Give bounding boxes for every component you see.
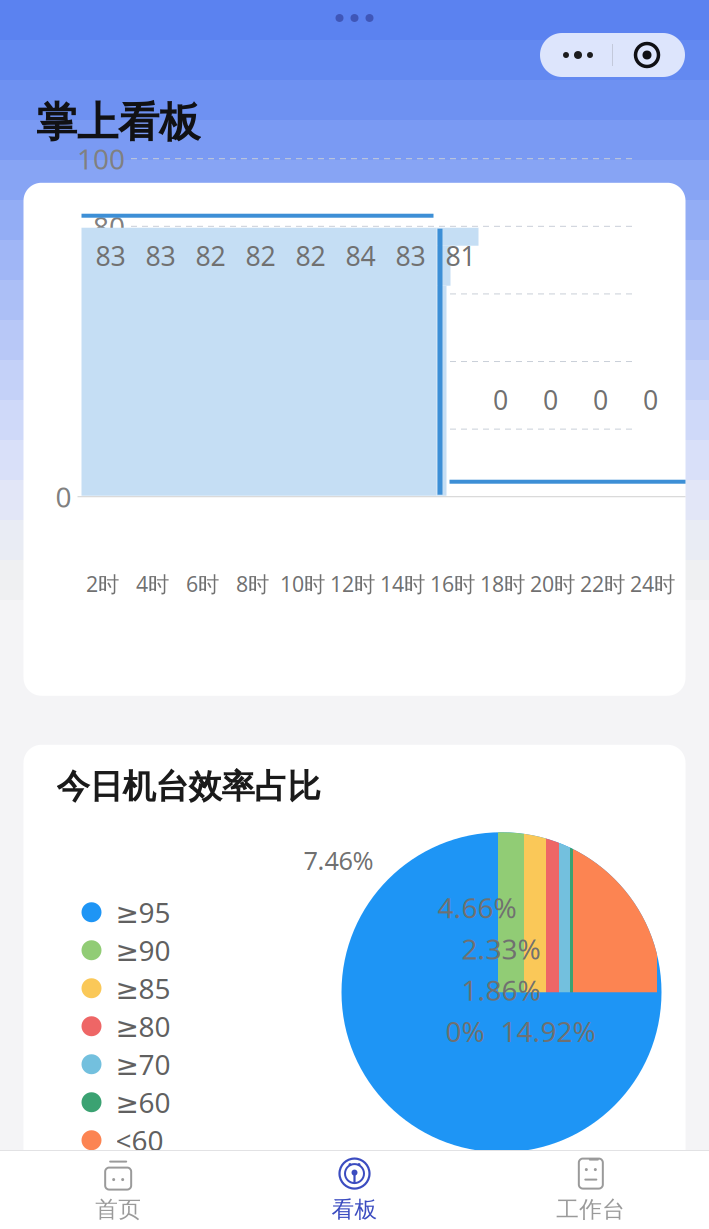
button[interactable]: Close bbox=[613, 33, 681, 77]
staticText: 0 bbox=[55, 478, 71, 515]
staticText: 首页 bbox=[95, 1196, 141, 1223]
staticText: 14.92% bbox=[500, 1012, 595, 1050]
staticText: 0 bbox=[593, 382, 608, 417]
staticText: 0% bbox=[445, 1012, 484, 1050]
button[interactable]: 工作台 bbox=[473, 1151, 709, 1229]
staticText: 83 bbox=[395, 238, 425, 273]
staticText: 掌上看板 bbox=[36, 97, 200, 148]
staticText: 6时 bbox=[186, 570, 219, 598]
staticText: 今日机台效率占比 bbox=[56, 766, 320, 807]
staticText: 83 bbox=[145, 238, 175, 273]
staticText: 4.66% bbox=[437, 889, 516, 926]
staticText: 12时 bbox=[330, 570, 375, 598]
staticText: 10时 bbox=[280, 570, 325, 598]
staticText: 0 bbox=[643, 382, 658, 417]
staticText: 14时 bbox=[380, 570, 425, 598]
staticText: 100 bbox=[77, 140, 125, 177]
button[interactable]: More bbox=[544, 33, 612, 77]
staticText: ≥95 bbox=[115, 894, 170, 931]
staticText: 20时 bbox=[530, 570, 575, 598]
staticText: 22时 bbox=[580, 570, 625, 598]
staticText: <60 bbox=[115, 1122, 163, 1159]
staticText: 82 bbox=[245, 238, 275, 273]
staticText: 83 bbox=[95, 238, 125, 273]
staticText: 2.33% bbox=[461, 930, 540, 967]
staticText: 18时 bbox=[480, 570, 525, 598]
staticText: ≥60 bbox=[115, 1084, 170, 1121]
button[interactable]: 看板 bbox=[236, 1151, 473, 1229]
staticText: ≥90 bbox=[115, 932, 170, 969]
staticText: 84 bbox=[345, 238, 375, 273]
staticText: 82 bbox=[295, 238, 325, 273]
staticText: 8时 bbox=[236, 570, 269, 598]
staticText: 16时 bbox=[430, 570, 475, 598]
staticText: ≥85 bbox=[115, 970, 170, 1007]
staticText: 2时 bbox=[86, 570, 119, 598]
staticText: 4时 bbox=[136, 570, 169, 598]
staticText: 0 bbox=[543, 382, 558, 417]
staticText: 82 bbox=[195, 238, 225, 273]
staticText: 7.46% bbox=[303, 843, 373, 877]
staticText: 看板 bbox=[331, 1196, 377, 1223]
staticText: 0 bbox=[493, 382, 508, 417]
staticText: 今日效率趋势 bbox=[56, 93, 254, 134]
button[interactable]: 首页 bbox=[0, 1151, 236, 1229]
staticText: ≥70 bbox=[115, 1046, 170, 1083]
staticText: 工作台 bbox=[556, 1196, 625, 1223]
staticText: ≥80 bbox=[115, 1008, 170, 1045]
staticText: 24时 bbox=[630, 570, 675, 598]
staticText: 80 bbox=[93, 208, 125, 245]
staticText: 81 bbox=[445, 238, 475, 273]
staticText: 1.86% bbox=[461, 971, 540, 1008]
